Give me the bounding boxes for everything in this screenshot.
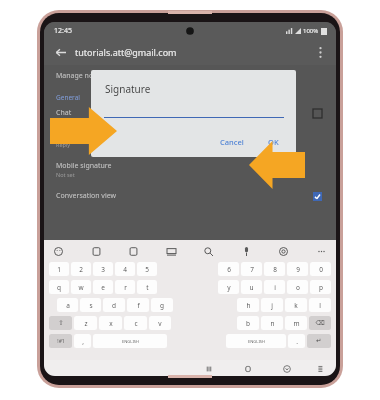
button[interactable]: 0 [310,262,331,276]
staticText: . [296,337,298,346]
staticText: 100% [303,27,319,35]
button[interactable]: r [115,280,135,294]
button[interactable]: Keyboard tool 2 [90,245,103,258]
staticText: Manage notifications [56,71,126,81]
button[interactable]: 1 [49,262,69,276]
button[interactable]: Chat [56,108,336,118]
button[interactable]: Keyboard tool 1 [52,245,65,258]
button[interactable]: o [287,280,308,294]
staticText: tutorials.att@gmail.com [75,46,311,58]
button[interactable]: b [237,316,259,330]
staticText: 7 [250,265,254,274]
button[interactable]: d [103,298,125,312]
staticText: 9 [296,265,300,274]
staticText: ⌫ [315,319,325,327]
button[interactable]: v [149,316,171,330]
staticText: a [66,301,70,310]
button[interactable]: ENGLISH [226,334,286,348]
staticText: u [249,283,254,292]
staticText: ENGLISH [248,339,265,344]
button[interactable]: 7 [241,262,262,276]
button[interactable]: 4 [115,262,135,276]
staticText: n [270,319,275,328]
button[interactable]: ↵ [307,334,331,348]
button[interactable]: Mobile signature [56,161,336,178]
button[interactable]: p [310,280,331,294]
staticText: m [293,319,300,328]
button[interactable]: z [74,316,97,330]
button[interactable]: j [261,298,283,312]
staticText: Not set [56,171,75,178]
button[interactable]: k [285,298,307,312]
staticText: j [271,301,273,310]
button[interactable]: Conversation view [56,191,336,201]
staticText: Chat [56,108,72,118]
button[interactable]: g [151,298,173,312]
staticText: Conversation view [56,191,117,201]
button[interactable]: Keyboard tool 4 [165,245,178,258]
button[interactable]: !#1 [49,334,72,348]
button[interactable]: More options [311,43,329,61]
staticText: Mobile signature [56,161,112,171]
staticText: p [319,283,323,292]
button[interactable]: Keyboard tool 3 [127,245,140,258]
button[interactable]: f [127,298,149,312]
button[interactable]: Cancel [213,134,251,150]
button[interactable]: c [124,316,147,330]
staticText: ↵ [316,337,322,345]
button[interactable]: Keyboard tool 8 [315,245,328,258]
staticText: 4 [123,265,127,274]
button[interactable]: 2 [71,262,91,276]
button[interactable]: OK [261,134,286,150]
staticText: General [56,93,80,102]
staticText: 3 [101,265,105,274]
button[interactable]: Keyboard tool 7 [277,245,290,258]
button[interactable]: Default notifications [56,131,336,148]
button[interactable]: h [237,298,259,312]
button[interactable]: m [285,316,307,330]
button[interactable]: t [137,280,157,294]
staticText: 2 [79,265,83,274]
button[interactable]: Keyboard tool 6 [240,245,253,258]
button[interactable]: 3 [93,262,113,276]
staticText: f [137,301,140,310]
staticText: w [78,283,84,292]
button[interactable]: w [71,280,91,294]
button[interactable]: ⇧ [49,316,72,330]
button[interactable]: a [57,298,78,312]
staticText: 12:45 [54,26,72,36]
button[interactable]: 6 [218,262,239,276]
staticText: z [84,319,88,328]
button[interactable]: l [309,298,331,312]
button[interactable]: u [241,280,262,294]
staticText: Default notifications [56,131,123,141]
button[interactable]: q [49,280,69,294]
button[interactable]: . [288,334,305,348]
button[interactable]: n [261,316,283,330]
button[interactable]: 5 [137,262,157,276]
button[interactable]: Home [241,362,254,375]
button[interactable]: , [74,334,91,348]
button[interactable]: Recents [202,362,215,375]
button[interactable]: y [218,280,239,294]
button[interactable]: ⌫ [309,316,331,330]
button[interactable]: 8 [264,262,285,276]
staticText: i [274,283,276,292]
staticText: 5 [145,265,149,274]
staticText: Signature [105,82,151,96]
staticText: Cancel [220,137,244,147]
button[interactable]: s [80,298,101,312]
button[interactable]: 9 [287,262,308,276]
button[interactable]: i [264,280,285,294]
button[interactable]: Keyboard tool 5 [202,245,215,258]
button[interactable]: Hide keyboard [280,362,293,375]
button[interactable]: Keyboard layout [313,362,326,375]
button[interactable]: Back [50,42,70,62]
button[interactable]: e [93,280,113,294]
staticText: q [57,283,61,292]
button[interactable]: x [99,316,122,330]
staticText: Reply [56,141,71,148]
button[interactable]: ENGLISH [93,334,167,348]
staticText: l [319,301,321,310]
